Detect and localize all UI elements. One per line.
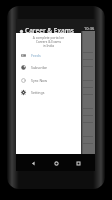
staticText: Settings — [31, 90, 45, 95]
button[interactable]: Settings — [16, 86, 81, 98]
staticText: Subscribe — [31, 65, 48, 70]
staticText: A complete portal on Careers & Exams in … — [16, 36, 81, 48]
button[interactable]: Feeds — [16, 49, 81, 61]
button[interactable]: Open navigation drawer — [17, 27, 25, 35]
staticText: Sync Now — [31, 78, 47, 83]
staticText: 10:36 — [84, 26, 95, 31]
button[interactable]: Subscribe — [16, 61, 81, 73]
button[interactable]: Back — [27, 157, 39, 169]
button[interactable]: Sync Now — [16, 74, 81, 86]
staticText: Career & Exams — [25, 26, 75, 35]
button[interactable]: Recents — [72, 157, 84, 169]
button[interactable]: Home — [50, 157, 62, 169]
staticText: Feeds — [31, 53, 41, 58]
